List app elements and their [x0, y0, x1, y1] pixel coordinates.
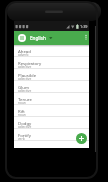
staticText: Plausible [18, 72, 37, 78]
staticText: adverb [18, 53, 29, 57]
button[interactable]: Glum [14, 81, 89, 93]
button[interactable]: Dodgy [14, 117, 89, 129]
staticText: adjective [18, 125, 32, 129]
staticText: noun [18, 101, 26, 105]
staticText: Fortify [18, 132, 31, 138]
button[interactable]: Plausible [14, 69, 89, 81]
staticText: Glum [18, 84, 29, 90]
button[interactable]: English [14, 31, 89, 45]
staticText: adjective [18, 89, 32, 93]
button[interactable]: Rift [14, 105, 89, 117]
staticText: Ahead [18, 48, 31, 54]
staticText: 1:39 [80, 24, 88, 29]
button[interactable]: Fortify [14, 129, 89, 141]
staticText: English [30, 35, 46, 41]
staticText: Tenure [18, 96, 32, 102]
staticText: adjective [18, 77, 32, 81]
button[interactable] [76, 133, 87, 144]
staticText: Respiratory [18, 60, 42, 66]
staticText: noun [18, 113, 26, 117]
staticText: adjective [18, 65, 32, 69]
staticText: Rift [18, 108, 25, 114]
button[interactable] [84, 36, 88, 40]
button[interactable]: Respiratory [14, 57, 89, 69]
button[interactable]: Ahead [14, 45, 89, 57]
staticText: verb [18, 137, 25, 141]
button[interactable]: Tenure [14, 93, 89, 105]
staticText: Dodgy [18, 120, 32, 126]
